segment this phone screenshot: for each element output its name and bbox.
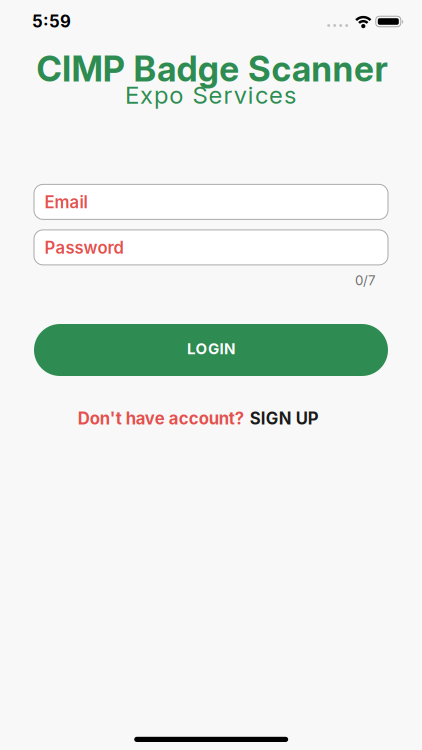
staticText: 0/7 [355,272,376,288]
staticText: CIMP Badge Scanner [37,48,387,90]
staticText: Don't have account? [78,408,244,429]
staticText: LOGIN [187,340,235,358]
staticText: 5:59 [32,11,71,32]
staticText: Password [45,238,124,258]
staticText: Expo Services [125,81,296,110]
staticText: Email [45,192,88,212]
staticText: SIGN UP [250,408,319,429]
